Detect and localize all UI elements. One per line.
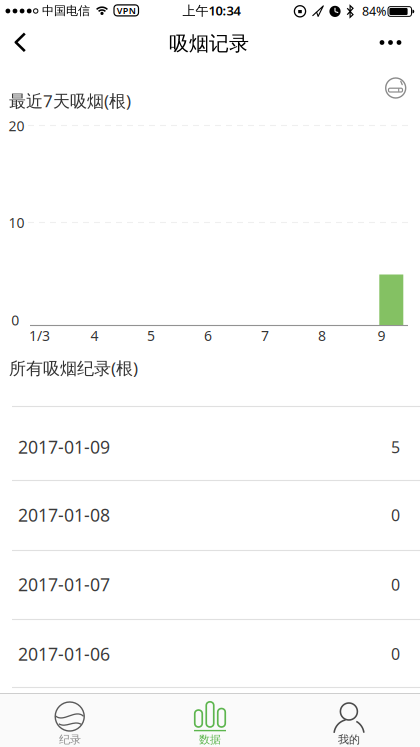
staticText: 5 bbox=[391, 436, 400, 458]
staticText: 2017-01-06 bbox=[18, 642, 110, 666]
staticText: 吸烟记录 bbox=[169, 31, 249, 56]
button[interactable]: 数据 bbox=[140, 694, 280, 747]
button[interactable]: More bbox=[368, 20, 412, 64]
staticText: 0 bbox=[391, 504, 400, 526]
staticText: VPN bbox=[117, 4, 136, 17]
staticText: 4 bbox=[90, 326, 98, 345]
staticText: 0 bbox=[391, 643, 400, 665]
button[interactable]: 纪录 bbox=[0, 694, 140, 747]
button[interactable]: 2017-01-06 bbox=[0, 619, 420, 688]
staticText: 中国电信 bbox=[42, 3, 90, 18]
staticText: 1/3 bbox=[29, 326, 50, 345]
staticText: 2017-01-09 bbox=[18, 435, 110, 459]
staticText: 5 bbox=[147, 326, 155, 345]
staticText: 9 bbox=[377, 326, 385, 345]
staticText: 2017-01-07 bbox=[18, 572, 110, 596]
staticText: 0 bbox=[391, 574, 400, 595]
staticText: 最近7天吸烟(根) bbox=[9, 89, 131, 112]
staticText: 84% bbox=[362, 2, 386, 19]
button[interactable]: 我的 bbox=[280, 694, 420, 747]
staticText: 数据 bbox=[199, 733, 221, 746]
button[interactable]: Back bbox=[0, 22, 44, 66]
staticText: 10 bbox=[8, 213, 24, 232]
staticText: 20 bbox=[8, 116, 24, 135]
staticText: 0 bbox=[11, 310, 19, 330]
staticText: 上午10:34 bbox=[182, 1, 240, 19]
staticText: 2017-01-08 bbox=[18, 503, 110, 527]
staticText: 8 bbox=[318, 326, 326, 345]
button[interactable]: 2017-01-09 bbox=[0, 412, 420, 481]
staticText: 7 bbox=[261, 326, 269, 345]
staticText: 我的 bbox=[338, 733, 360, 746]
button[interactable]: 2017-01-08 bbox=[0, 480, 420, 549]
staticText: 所有吸烟纪录(根) bbox=[9, 356, 138, 380]
button[interactable]: Cigarette bbox=[376, 68, 416, 108]
staticText: 纪录 bbox=[59, 733, 81, 746]
button[interactable]: 2017-01-07 bbox=[0, 550, 420, 619]
staticText: 6 bbox=[204, 326, 212, 345]
